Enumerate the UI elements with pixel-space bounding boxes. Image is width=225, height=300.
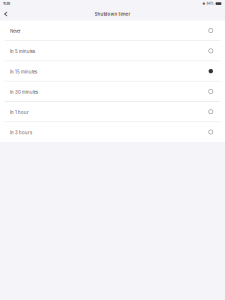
- button[interactable]: In 15 minutes: [0, 61, 225, 81]
- staticText: 11:38: [3, 1, 10, 6]
- button[interactable]: In 1 hour: [0, 102, 225, 121]
- staticText: In 15 minutes: [10, 69, 37, 74]
- button[interactable]: In 30 minutes: [0, 82, 225, 101]
- staticText: Shutdown timer: [94, 11, 130, 17]
- staticText: Never: [10, 29, 21, 34]
- button[interactable]: Back: [0, 7, 11, 21]
- staticText: In 1 hour: [10, 110, 29, 115]
- staticText: In 30 minutes: [10, 90, 38, 95]
- staticText: In 5 minutes: [10, 49, 35, 54]
- button[interactable]: Never: [0, 21, 225, 40]
- button[interactable]: In 3 hours: [0, 122, 225, 142]
- staticText: In 3 hours: [10, 130, 32, 135]
- button[interactable]: In 5 minutes: [0, 41, 225, 61]
- staticText: 64%: [206, 1, 213, 6]
